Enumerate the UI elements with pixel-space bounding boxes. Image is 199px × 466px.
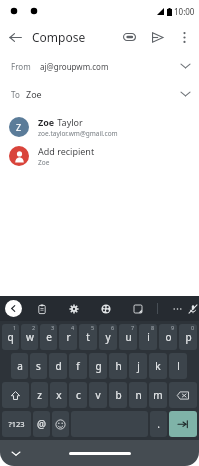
staticText: q xyxy=(7,330,14,344)
button[interactable]: s xyxy=(30,353,47,379)
staticText: i xyxy=(147,330,150,344)
staticText: 1 xyxy=(13,324,17,331)
staticText: Compose xyxy=(32,29,86,45)
staticText: . xyxy=(157,417,160,431)
staticText: u xyxy=(125,330,132,344)
button[interactable]: f xyxy=(69,353,87,379)
button[interactable]: Backspace xyxy=(169,382,197,408)
button[interactable]: Voice input off xyxy=(186,300,199,317)
button[interactable]: ?123 xyxy=(2,411,31,437)
button[interactable]: h xyxy=(109,353,127,379)
button[interactable]: . xyxy=(150,411,167,437)
button[interactable]: Enter xyxy=(169,411,197,437)
button[interactable]: Z xyxy=(0,112,199,141)
button[interactable]: a xyxy=(11,353,28,379)
staticText: t xyxy=(86,330,90,344)
button[interactable]: Emoji xyxy=(52,411,69,437)
button[interactable]: n xyxy=(129,382,147,408)
button[interactable]: u xyxy=(119,324,137,350)
button[interactable]: Themes xyxy=(97,300,114,317)
staticText: Zoe xyxy=(26,88,42,100)
staticText: y xyxy=(105,330,111,344)
button[interactable]: y xyxy=(99,324,117,350)
button[interactable]: q xyxy=(2,324,19,350)
staticText: 2 xyxy=(32,324,36,331)
button[interactable]: Hide keyboard xyxy=(8,445,24,461)
button[interactable]: d xyxy=(49,353,67,379)
button[interactable]: g xyxy=(89,353,107,379)
button[interactable]: x xyxy=(50,382,67,408)
staticText: zoe.taylor.wm@gmail.com xyxy=(38,129,118,138)
button[interactable]: Add recipient xyxy=(0,141,199,170)
button[interactable]: Back xyxy=(0,22,30,52)
button[interactable]: o xyxy=(159,324,177,350)
button[interactable]: Settings xyxy=(65,300,82,317)
staticText: Zoe xyxy=(38,158,50,167)
button[interactable]: To xyxy=(0,80,199,108)
staticText: aj@groupwm.com xyxy=(40,61,109,72)
staticText: x xyxy=(56,388,62,402)
staticText: Taylor xyxy=(55,116,83,128)
staticText: s xyxy=(36,359,41,373)
staticText: ?123 xyxy=(8,419,25,429)
button[interactable]: More options xyxy=(171,24,197,50)
staticText: v xyxy=(95,388,101,402)
staticText: To xyxy=(11,89,20,100)
button[interactable]: w xyxy=(21,324,38,350)
staticText: a xyxy=(17,359,23,373)
staticText: l xyxy=(177,359,180,373)
button[interactable]: Clipboard xyxy=(33,300,50,317)
staticText: n xyxy=(135,388,142,402)
button[interactable]: m xyxy=(149,382,167,408)
staticText: From xyxy=(11,61,31,72)
staticText: 6 xyxy=(111,324,115,331)
button[interactable]: Close toolbar xyxy=(5,300,22,317)
staticText: k xyxy=(155,359,161,373)
staticText: w xyxy=(26,330,34,344)
button[interactable]: r xyxy=(59,324,77,350)
button[interactable]: c xyxy=(69,382,87,408)
staticText: Z xyxy=(16,121,22,133)
staticText: 9 xyxy=(171,324,175,331)
staticText: 5 xyxy=(91,324,95,331)
button[interactable]: e xyxy=(40,324,57,350)
staticText: h xyxy=(115,359,122,373)
staticText: Zoe xyxy=(38,116,55,128)
button[interactable]: i xyxy=(139,324,157,350)
staticText: 4 xyxy=(71,324,75,331)
staticText: Add recipient xyxy=(38,145,95,157)
button[interactable]: k xyxy=(149,353,167,379)
staticText: j xyxy=(137,359,140,373)
staticText: @ xyxy=(37,417,46,431)
button[interactable]: t xyxy=(79,324,97,350)
button[interactable]: p xyxy=(179,324,197,350)
button[interactable]: l xyxy=(169,353,187,379)
staticText: m xyxy=(153,388,163,402)
button[interactable]: z xyxy=(31,382,48,408)
button[interactable]: @ xyxy=(33,411,50,437)
staticText: r xyxy=(66,330,71,344)
staticText: 0 xyxy=(191,324,195,331)
staticText: g xyxy=(95,359,102,373)
button[interactable]: From xyxy=(0,52,199,80)
staticText: d xyxy=(55,359,62,373)
staticText: b xyxy=(115,388,122,402)
staticText: o xyxy=(165,330,172,344)
button[interactable]: Stickers xyxy=(129,300,146,317)
staticText: 10:00 xyxy=(174,6,195,17)
button[interactable]: j xyxy=(129,353,147,379)
staticText: c xyxy=(76,388,81,402)
button[interactable]: b xyxy=(109,382,127,408)
button[interactable]: Send xyxy=(143,23,171,51)
staticText: 8 xyxy=(151,324,155,331)
button[interactable]: More xyxy=(169,300,186,317)
button[interactable]: v xyxy=(89,382,107,408)
staticText: f xyxy=(76,359,80,373)
button[interactable]: Attach file xyxy=(115,23,143,51)
staticText: 7 xyxy=(131,324,135,331)
staticText: e xyxy=(46,330,52,344)
staticText: z xyxy=(37,388,42,402)
button[interactable]: Shift xyxy=(2,382,29,408)
staticText: 3 xyxy=(51,324,55,331)
